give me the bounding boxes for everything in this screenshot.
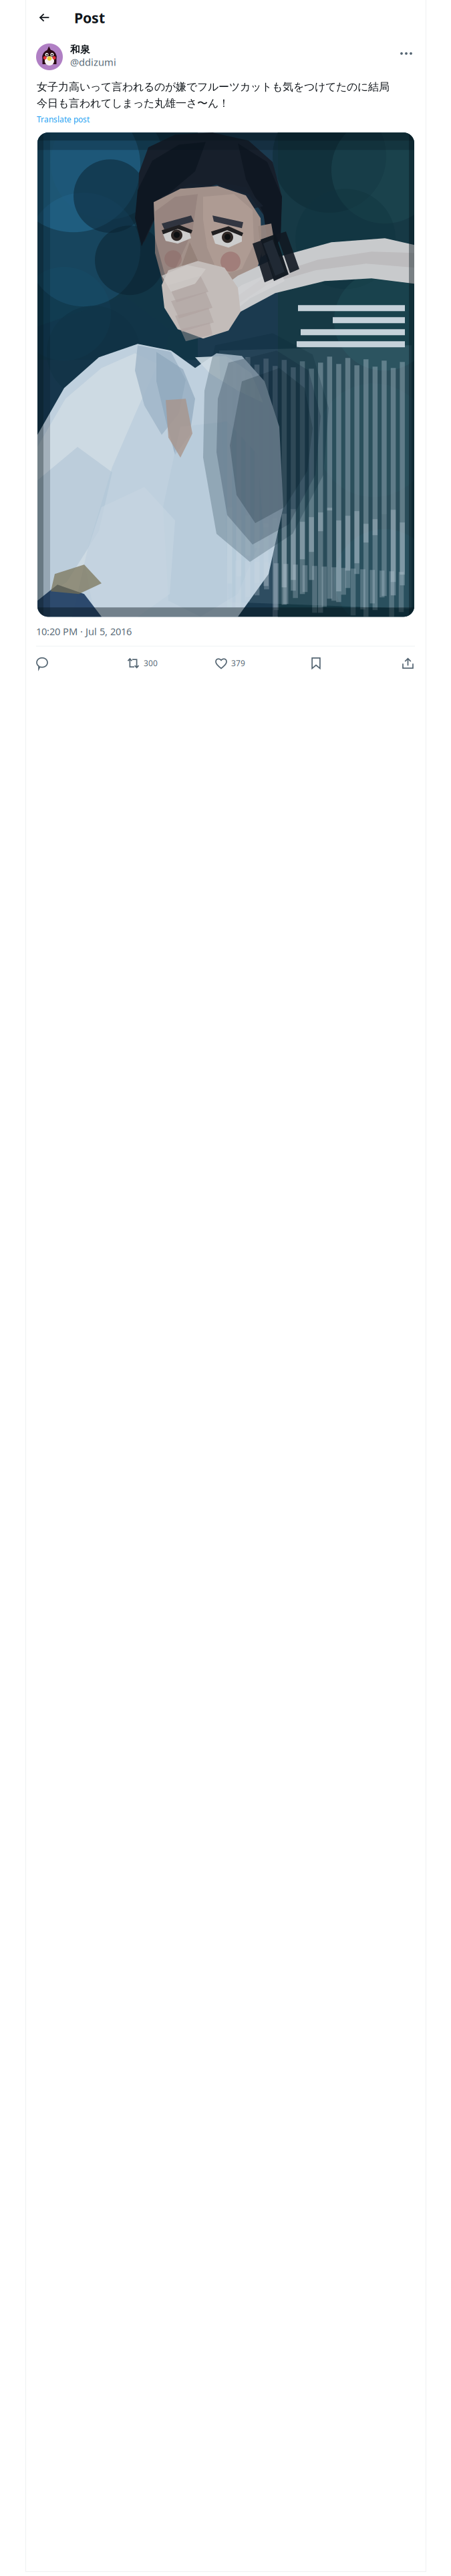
button[interactable]: Back xyxy=(33,4,56,31)
staticText: 300 xyxy=(144,658,158,669)
staticText: 女子力高いって言われるのが嫌でフルーツカットも気をつけてたのに結局 xyxy=(37,80,390,93)
staticText: Translate post xyxy=(37,114,90,125)
staticText: Post xyxy=(74,8,105,27)
staticText: @ddizumi xyxy=(70,56,116,69)
button[interactable]: More xyxy=(396,43,416,64)
staticText: 和泉 xyxy=(70,43,90,56)
button[interactable]: Translate post xyxy=(37,114,90,125)
button[interactable]: 379 xyxy=(215,652,245,675)
button[interactable]: Bookmark xyxy=(303,652,329,675)
staticText: 379 xyxy=(231,658,245,669)
button[interactable]: 300 xyxy=(127,652,158,675)
button[interactable]: Profile photo xyxy=(36,43,63,70)
button[interactable]: Reply xyxy=(36,652,69,675)
button[interactable]: Attached photo xyxy=(37,133,414,617)
button[interactable]: Share xyxy=(387,652,414,675)
staticText: 今日も言われてしまった丸雄一さ〜ん！ xyxy=(37,97,229,110)
staticText: 10:20 PM · Jul 5, 2016 xyxy=(36,625,132,638)
